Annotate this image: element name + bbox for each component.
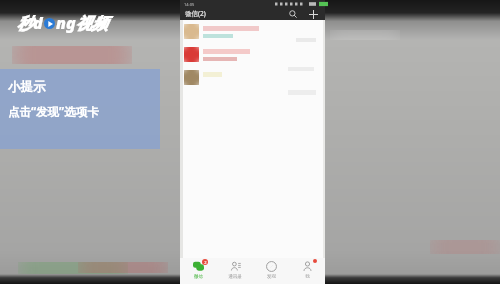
staticText: 2 [204,260,207,265]
staticText: 发现 [267,274,276,280]
staticText: 小提示 [8,79,46,95]
staticText: 微信 [194,274,203,280]
staticText: 我 [305,274,310,280]
button[interactable]: 通讯录 [217,258,253,284]
staticText: 点击“发现”选项卡 [8,104,99,120]
staticText: ng视频 [56,12,108,34]
button[interactable]: Search [287,8,299,20]
button[interactable]: Add [307,8,319,20]
button[interactable]: 发现 [253,258,289,284]
staticText: 通讯录 [228,274,242,280]
button[interactable]: 我 [289,258,325,284]
button[interactable]: 2 [180,258,217,284]
staticText: 秒d [17,12,43,34]
staticText: 14:05 [184,2,195,7]
button[interactable]: 小提示 [0,69,160,149]
staticText: 微信(2) [185,9,206,18]
